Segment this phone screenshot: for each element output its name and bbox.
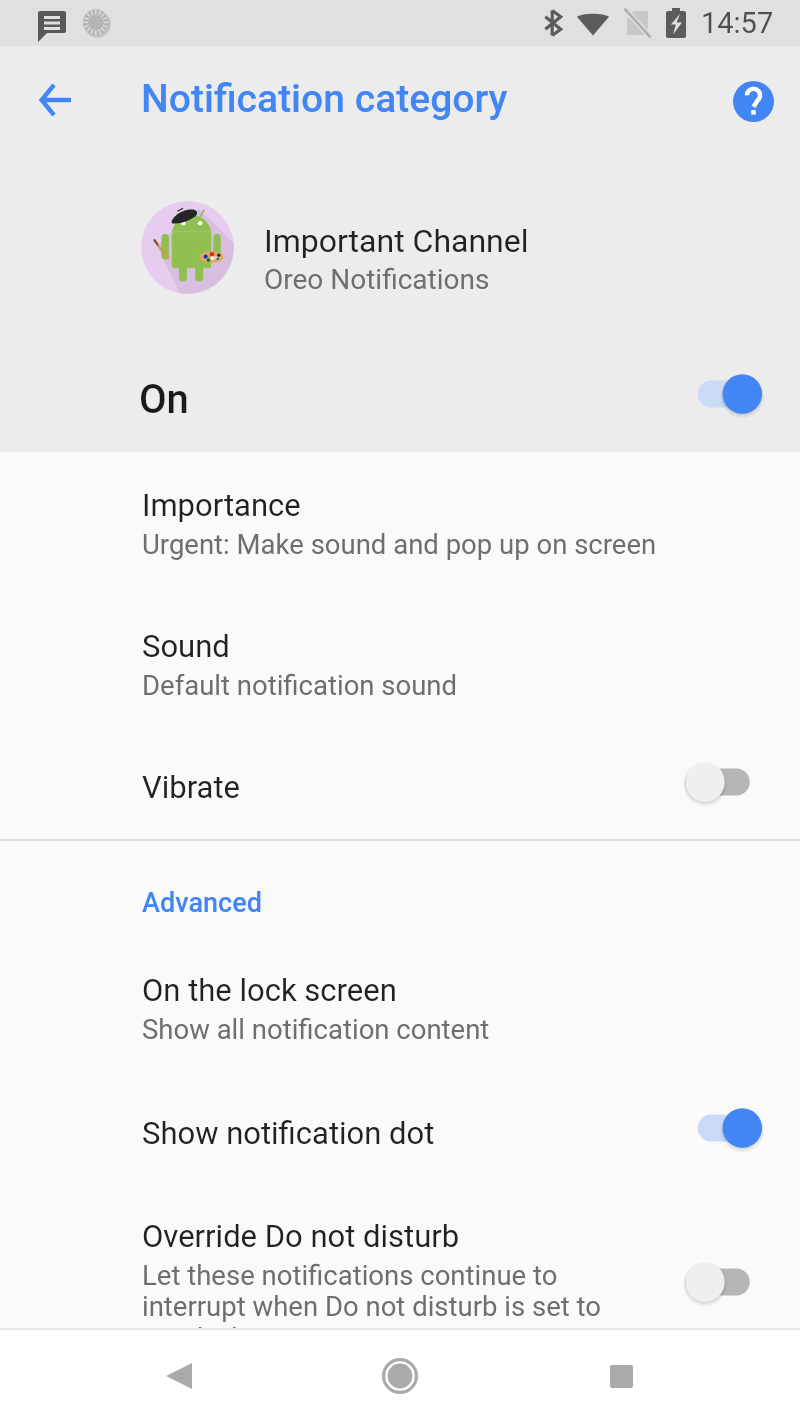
staticText: Vibrate bbox=[142, 769, 241, 805]
button[interactable]: Vibrate bbox=[0, 739, 800, 830]
staticText: Advanced bbox=[142, 887, 262, 919]
button[interactable]: Advanced bbox=[0, 864, 800, 942]
staticText: Importance bbox=[142, 487, 301, 523]
staticText: Show all notification content bbox=[142, 1013, 490, 1045]
button[interactable]: Back bbox=[133, 1330, 225, 1422]
button[interactable]: Help bbox=[719, 65, 787, 133]
staticText: Important Channel bbox=[264, 222, 529, 260]
button[interactable]: Recent apps bbox=[575, 1330, 667, 1422]
staticText: Show notification dot bbox=[142, 1115, 435, 1151]
button[interactable]: On bbox=[0, 347, 800, 452]
button[interactable]: Switch on bbox=[682, 1100, 762, 1156]
button[interactable]: Home bbox=[354, 1330, 446, 1422]
button[interactable]: Override Do not disturb bbox=[0, 1188, 800, 1328]
staticText: Oreo Notifications bbox=[264, 263, 490, 296]
staticText: On the lock screen bbox=[142, 972, 397, 1008]
button[interactable]: Switch on bbox=[682, 366, 762, 422]
button[interactable]: Navigate up bbox=[16, 60, 94, 138]
staticText: Let these notifications continue to inte… bbox=[142, 1259, 601, 1355]
button[interactable]: Switch off bbox=[682, 1254, 762, 1310]
staticText: Default notification sound bbox=[142, 669, 458, 701]
staticText: Override Do not disturb bbox=[142, 1218, 460, 1254]
button[interactable]: On the lock screen bbox=[0, 942, 800, 1066]
staticText: Urgent: Make sound and pop up on screen bbox=[142, 528, 657, 560]
button[interactable]: Switch off bbox=[682, 754, 762, 810]
button[interactable]: Sound bbox=[0, 598, 800, 722]
staticText: Sound bbox=[142, 628, 230, 664]
button[interactable]: Show notification dot bbox=[0, 1085, 800, 1176]
staticText: Notification category bbox=[141, 76, 508, 122]
staticText: On bbox=[139, 376, 189, 423]
staticText: 14:57 bbox=[701, 6, 774, 40]
button[interactable]: Importance bbox=[0, 457, 800, 581]
